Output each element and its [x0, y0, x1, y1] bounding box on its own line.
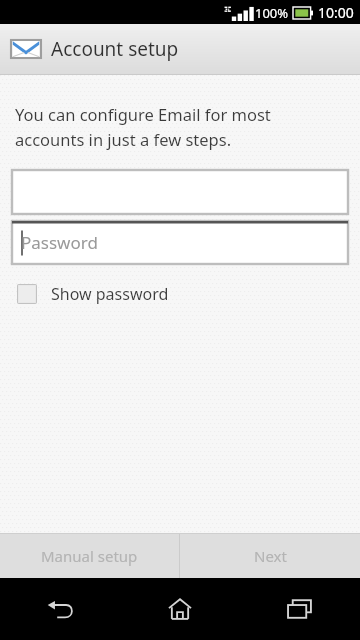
button[interactable]: Recent apps	[240, 578, 360, 640]
staticText: Next	[254, 546, 287, 566]
button[interactable]	[12, 170, 348, 214]
button[interactable]: Back	[0, 578, 120, 640]
staticText: Manual setup	[41, 546, 138, 566]
staticText: 10:00	[318, 3, 354, 22]
button[interactable]: Next	[180, 534, 360, 578]
button[interactable]: Password	[12, 221, 348, 264]
staticText: You can configure Email for most	[15, 103, 271, 125]
staticText: Show password	[51, 283, 169, 305]
button[interactable]: Show password	[13, 280, 169, 308]
staticText: Password	[21, 231, 98, 254]
staticText: Account setup	[51, 36, 179, 62]
button[interactable]: Manual setup	[0, 534, 179, 578]
button[interactable]: Home	[120, 578, 240, 640]
staticText: accounts in just a few steps.	[15, 128, 232, 150]
staticText: 100%	[255, 4, 289, 22]
